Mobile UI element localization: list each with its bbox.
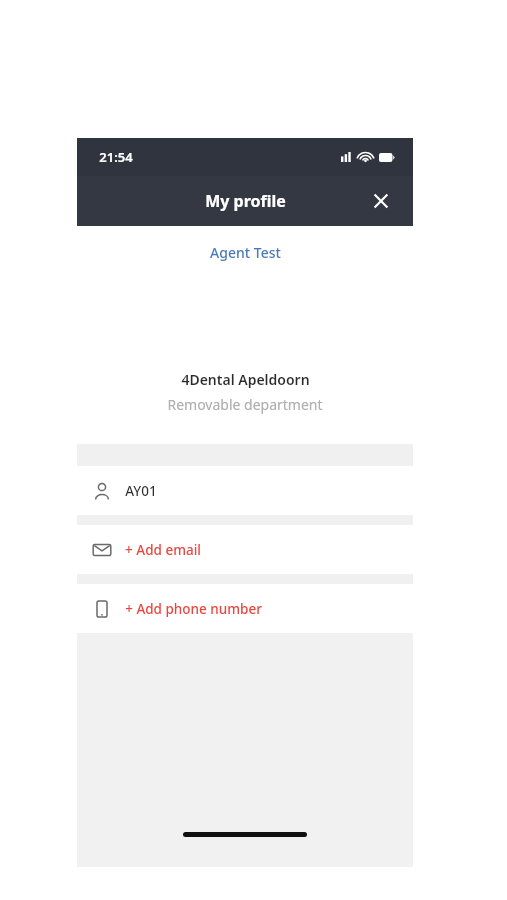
staticText: My profile [205,190,286,212]
button[interactable]: + Add phone number [77,584,413,633]
button[interactable]: Close [363,183,399,219]
staticText: + Add phone number [125,600,262,618]
staticText: Agent Test [210,243,281,262]
button[interactable]: Agent Test [200,239,291,266]
staticText: 21:54 [99,148,133,166]
staticText: 4Dental Apeldoorn [181,370,310,389]
staticText: + Add email [125,541,201,559]
button[interactable]: + Add email [77,525,413,574]
button[interactable]: AY01 [77,466,413,515]
staticText: AY01 [125,482,157,500]
staticText: Removable department [167,395,323,414]
